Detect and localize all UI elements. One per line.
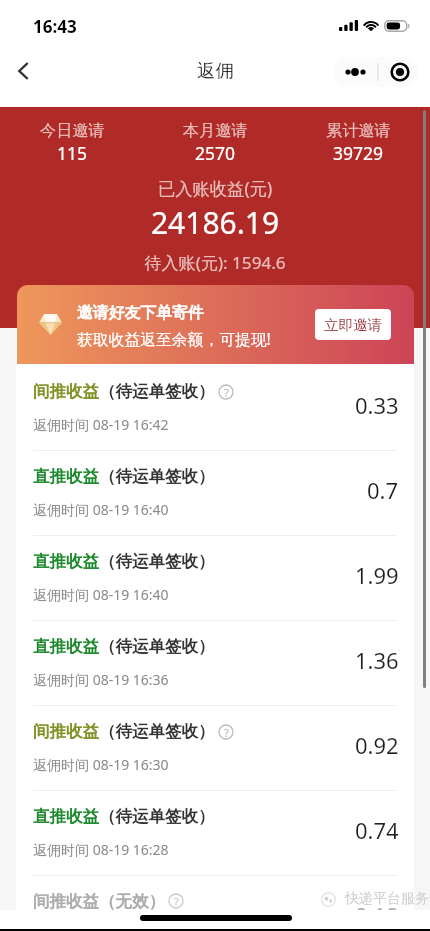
- staticText: 邀请好友下单寄件: [77, 303, 204, 323]
- staticText: （待运单签收）: [99, 721, 215, 742]
- button[interactable]: 间推收益: [16, 706, 414, 790]
- staticText: 返佣时间 08-19 16:36: [33, 670, 169, 689]
- staticText: 间推收益: [33, 891, 99, 910]
- staticText: 直推收益: [33, 806, 99, 827]
- staticText: 间推收益: [33, 381, 99, 402]
- staticText: 返佣时间 08-19 16:40: [33, 500, 169, 519]
- staticText: 立即邀请: [324, 316, 382, 334]
- staticText: 2570: [195, 141, 236, 165]
- staticText: 已入账收益(元): [0, 177, 430, 201]
- staticText: （待运单签收）: [99, 806, 215, 827]
- button[interactable]: 直推收益: [16, 451, 414, 535]
- button[interactable]: 直推收益: [16, 536, 414, 620]
- staticText: （待运单签收）: [99, 381, 215, 402]
- staticText: 返佣时间 08-19 16:28: [33, 840, 169, 859]
- staticText: 返佣时间 08-19 16:40: [33, 585, 169, 604]
- staticText: 1.36: [355, 645, 399, 675]
- staticText: 1.99: [355, 560, 399, 590]
- staticText: 115: [57, 141, 88, 165]
- staticText: 返佣时间 08-19 16:30: [33, 755, 169, 774]
- staticText: ?: [224, 725, 229, 740]
- staticText: 0.92: [355, 730, 399, 760]
- staticText: 直推收益: [33, 551, 99, 572]
- button[interactable]: 间推收益: [16, 876, 414, 910]
- button[interactable]: 邀请好友下单寄件: [17, 285, 414, 364]
- staticText: 直推收益: [33, 636, 99, 657]
- button[interactable]: 直推收益: [16, 791, 414, 875]
- staticText: 本月邀请: [183, 120, 248, 140]
- staticText: 16:43: [33, 15, 77, 38]
- staticText: 获取收益返至余额，可提现!: [77, 328, 271, 350]
- staticText: （待运单签收）: [99, 551, 215, 572]
- staticText: （待运单签收）: [99, 636, 215, 657]
- staticText: 39729: [333, 141, 384, 165]
- staticText: ?: [224, 385, 229, 400]
- staticText: 0.7: [367, 475, 399, 505]
- staticText: 返佣: [197, 59, 234, 82]
- staticText: 今日邀请: [40, 120, 105, 140]
- button[interactable]: More options: [333, 57, 418, 87]
- staticText: 间推收益: [33, 721, 99, 742]
- staticText: 24186.19: [0, 202, 430, 243]
- staticText: 快递平台服务号: [345, 890, 430, 908]
- staticText: 直推收益: [33, 466, 99, 487]
- button[interactable]: 间推收益: [16, 366, 414, 450]
- button[interactable]: Back: [2, 51, 42, 91]
- button[interactable]: 直推收益: [16, 621, 414, 705]
- staticText: （无效）: [99, 891, 165, 910]
- staticText: （待运单签收）: [99, 466, 215, 487]
- staticText: 0.74: [355, 815, 399, 845]
- staticText: 0.33: [355, 390, 399, 420]
- staticText: 待入账(元): 1594.6: [0, 251, 430, 274]
- staticText: 返佣时间 08-19 16:42: [33, 415, 169, 434]
- staticText: 累计邀请: [326, 120, 391, 140]
- staticText: 0.18: [355, 900, 399, 910]
- button[interactable]: 立即邀请: [315, 309, 391, 340]
- staticText: ?: [174, 894, 179, 909]
